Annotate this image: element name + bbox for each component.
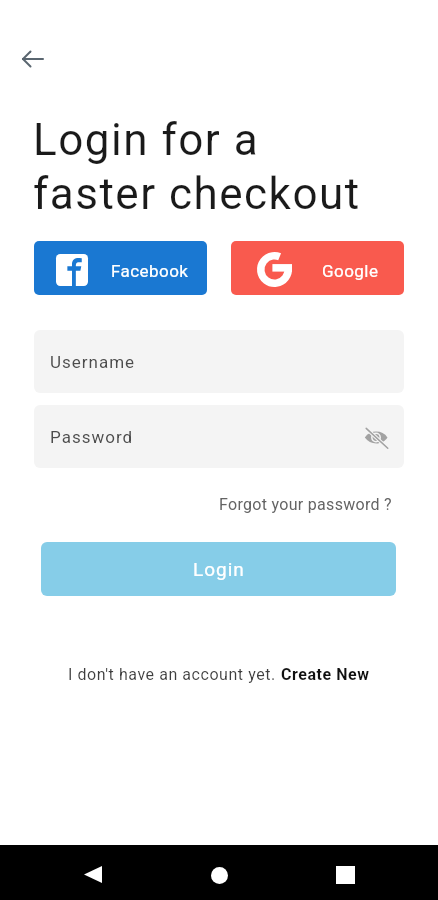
staticText: I don't have an account yet. (68, 665, 281, 684)
button[interactable]: Back (18, 43, 50, 75)
button[interactable]: Username (34, 330, 404, 393)
button[interactable]: Back (60, 845, 126, 900)
staticText: Facebook (111, 261, 189, 281)
button[interactable]: Create New (281, 665, 370, 684)
button[interactable]: Show password (362, 423, 390, 451)
staticText: Username (50, 352, 136, 372)
staticText: Google (322, 261, 379, 281)
staticText: Login for a faster checkout (33, 114, 361, 219)
staticText: Password (50, 427, 134, 447)
button[interactable]: Password (34, 405, 404, 468)
button[interactable]: Forgot your password ? (215, 491, 396, 518)
button[interactable]: Google (231, 241, 404, 295)
staticText: Login (193, 558, 245, 580)
button[interactable]: Home (186, 845, 252, 900)
button[interactable]: Facebook (34, 241, 207, 295)
button[interactable]: Recent apps (312, 845, 378, 900)
button[interactable]: Login (41, 542, 396, 596)
